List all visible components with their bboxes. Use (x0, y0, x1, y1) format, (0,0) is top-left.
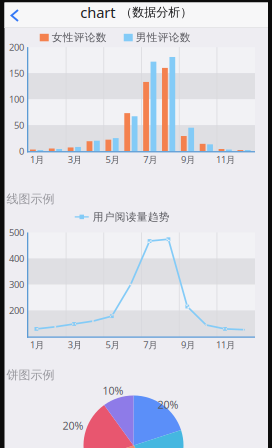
staticText: 用户阅读量趋势 (93, 210, 170, 223)
staticText: 1月 (30, 153, 44, 166)
staticText: 男性评论数 (136, 31, 191, 44)
staticText: 7月 (143, 153, 157, 166)
staticText: 200 (9, 41, 24, 53)
staticText: 300 (9, 278, 24, 291)
staticText: 5月 (105, 153, 119, 166)
staticText: 200 (9, 304, 24, 317)
staticText: 3月 (68, 338, 82, 351)
staticText: 500 (9, 226, 24, 239)
staticText: 11月 (216, 338, 235, 351)
staticText: 50 (14, 119, 24, 131)
staticText: 5月 (105, 338, 119, 351)
staticText: 10% (102, 383, 123, 398)
staticText: 100 (9, 93, 24, 105)
staticText: 150 (9, 67, 24, 79)
staticText: chart (80, 2, 115, 22)
staticText: 1月 (30, 338, 44, 351)
staticText: 400 (9, 252, 24, 265)
staticText: 0 (19, 145, 24, 157)
staticText: 20% (62, 418, 83, 433)
staticText: 9月 (181, 338, 195, 351)
staticText: 7月 (143, 338, 157, 351)
button[interactable]: Back (4, 3, 30, 28)
staticText: 饼图示例 (6, 368, 54, 382)
staticText: 线图示例 (6, 192, 54, 206)
staticText: 11月 (216, 153, 235, 166)
staticText: 3月 (68, 153, 82, 166)
staticText: （数据分析） (120, 5, 192, 20)
staticText: 20% (157, 397, 178, 412)
staticText: 女性评论数 (52, 31, 107, 44)
staticText: 9月 (181, 153, 195, 166)
